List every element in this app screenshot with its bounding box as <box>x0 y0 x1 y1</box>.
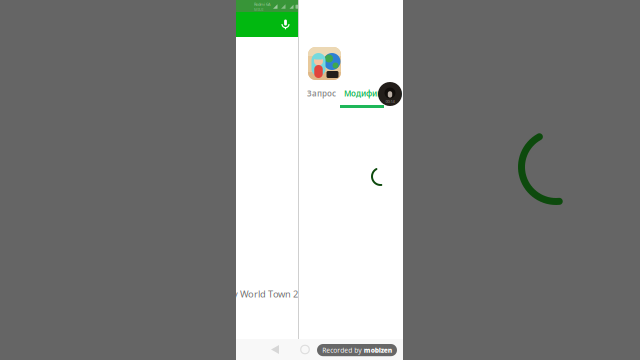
staticText: Модификация <box>344 88 402 99</box>
button[interactable]: Home <box>290 339 320 360</box>
staticText: y World Town 2020 <box>233 288 313 300</box>
staticText: Recorded by <box>322 346 361 355</box>
staticText: Redmi 6A <box>254 1 271 7</box>
staticText: Запрос <box>307 88 336 99</box>
button[interactable]: Запрос <box>303 82 340 105</box>
staticText: MIUI <box>254 7 263 12</box>
staticText: mobizen <box>364 346 392 355</box>
button[interactable]: Модификация <box>340 82 406 108</box>
button[interactable]: Back <box>260 339 290 360</box>
staticText: 00:14 <box>385 99 394 104</box>
